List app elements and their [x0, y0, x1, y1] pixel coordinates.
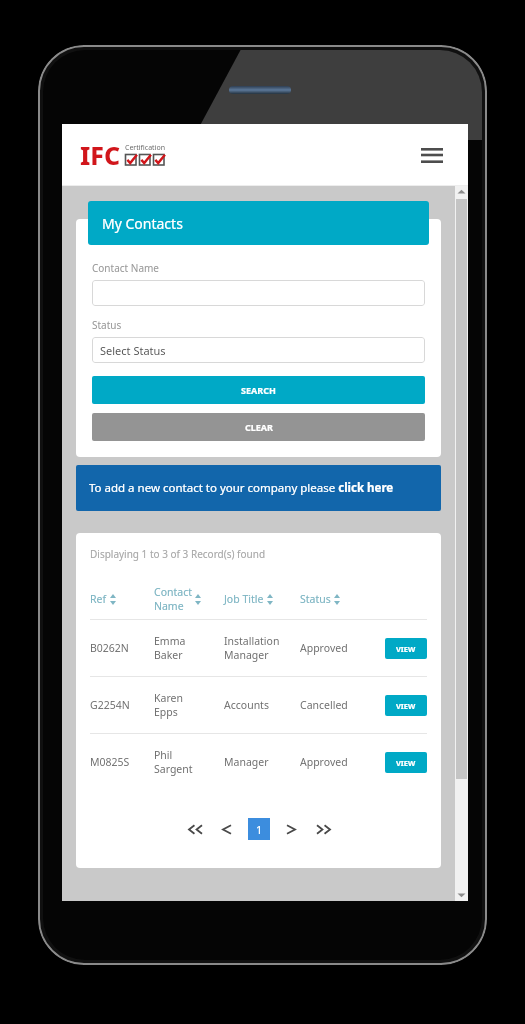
button[interactable]: Previous page — [218, 820, 236, 838]
staticText: VIEW — [396, 758, 416, 768]
staticText: Approved — [300, 755, 348, 769]
button[interactable]: Job Title — [224, 592, 300, 606]
button[interactable]: Contact Name — [154, 585, 224, 613]
staticText: B0262N — [90, 641, 129, 655]
staticText: Job Title — [224, 592, 264, 606]
staticText: Approved — [300, 641, 348, 655]
staticText: Ref — [90, 592, 107, 606]
staticText: VIEW — [396, 644, 416, 654]
button[interactable]: G2254N — [90, 677, 427, 733]
staticText: Status — [92, 318, 122, 332]
staticText: VIEW — [396, 701, 416, 711]
staticText: Karen Epps — [154, 691, 183, 719]
button[interactable]: B0262N — [90, 620, 427, 676]
staticText: Manager — [224, 755, 269, 769]
button[interactable]: Menu — [414, 137, 450, 173]
button[interactable]: Status — [300, 592, 370, 606]
staticText: Cancelled — [300, 698, 348, 712]
button[interactable]: First page — [186, 820, 204, 838]
button[interactable]: CLEAR — [92, 413, 425, 441]
staticText: Emma Baker — [154, 634, 186, 662]
button[interactable]: 1 — [248, 818, 270, 840]
button[interactable]: SEARCH — [92, 376, 425, 404]
button[interactable]: VIEW — [385, 638, 427, 659]
button[interactable]: Last page — [314, 820, 332, 838]
staticText: G2254N — [90, 698, 130, 712]
button[interactable]: To add a new contact to your company ple… — [76, 465, 441, 511]
staticText: Accounts — [224, 698, 269, 712]
button[interactable]: VIEW — [385, 695, 427, 716]
button[interactable]: VIEW — [385, 752, 427, 773]
staticText: SEARCH — [241, 384, 276, 396]
button[interactable]: My Contacts — [88, 201, 429, 245]
staticText: Select Status — [100, 343, 166, 358]
staticText: Phil Sargent — [154, 748, 193, 776]
staticText: My Contacts — [102, 214, 183, 233]
button[interactable]: Select Status — [92, 337, 425, 363]
staticText: Displaying 1 to 3 of 3 Record(s) found — [90, 547, 266, 561]
staticText: 1 — [256, 822, 263, 837]
staticText: CLEAR — [245, 421, 273, 433]
button[interactable] — [92, 280, 425, 306]
staticText: Contact Name — [92, 261, 159, 275]
button[interactable]: M0825S — [90, 734, 427, 790]
staticText: To add a new contact to your company ple… — [89, 480, 394, 496]
staticText: IFC — [80, 138, 121, 172]
staticText: M0825S — [90, 755, 130, 769]
button[interactable]: Ref — [90, 592, 154, 606]
staticText: Contact Name — [154, 585, 192, 613]
button[interactable]: Next page — [282, 820, 300, 838]
staticText: Installation Manager — [224, 634, 280, 662]
staticText: Status — [300, 592, 331, 606]
staticText: Certification — [125, 143, 165, 153]
